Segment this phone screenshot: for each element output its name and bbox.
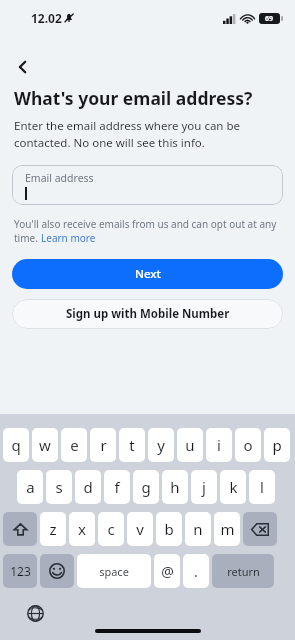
staticText: space (99, 564, 129, 579)
button[interactable]: return (212, 554, 274, 588)
staticText: 12.02 (31, 10, 62, 26)
button[interactable]: n (185, 512, 211, 546)
button[interactable]: t (119, 428, 145, 462)
staticText: a (26, 477, 35, 497)
staticText: j (202, 477, 206, 497)
button[interactable]: h (162, 470, 188, 504)
button[interactable]: u (177, 428, 203, 462)
staticText: u (185, 435, 195, 455)
button[interactable]: Sign up with Mobile Number (12, 299, 283, 329)
button[interactable]: j (191, 470, 217, 504)
button[interactable]: Email address (12, 165, 283, 205)
button[interactable]: z (40, 512, 66, 546)
button[interactable]: g (133, 470, 159, 504)
staticText: @ (161, 562, 174, 581)
staticText: i (217, 435, 221, 455)
button[interactable]: b (156, 512, 182, 546)
button[interactable]: m (214, 512, 240, 546)
button[interactable]: space (77, 554, 151, 588)
staticText: e (70, 435, 79, 455)
button[interactable]: f (104, 470, 130, 504)
staticText: m (220, 519, 235, 539)
button[interactable]: v (127, 512, 153, 546)
staticText: Sign up with Mobile Number (66, 306, 230, 322)
button[interactable]: e (61, 428, 87, 462)
button[interactable]: Delete (243, 512, 277, 546)
staticText: 123 (10, 563, 31, 579)
staticText: c (107, 519, 115, 539)
staticText: r (100, 435, 107, 455)
button[interactable]: l (249, 470, 275, 504)
staticText: t (129, 435, 135, 455)
button[interactable]: p (264, 428, 290, 462)
button[interactable]: Learn more (41, 231, 96, 245)
button[interactable]: Back (8, 52, 38, 82)
button[interactable]: @ (154, 554, 180, 588)
button[interactable]: c (98, 512, 124, 546)
staticText: p (272, 435, 282, 455)
staticText: Email address (25, 171, 94, 185)
staticText: f (114, 477, 120, 497)
staticText: 69 (265, 14, 274, 24)
staticText: k (229, 477, 238, 497)
button[interactable]: i (206, 428, 232, 462)
button[interactable]: . (183, 554, 209, 588)
staticText: d (83, 477, 93, 497)
staticText: What's your email address? (14, 86, 253, 110)
staticText: y (157, 435, 165, 455)
staticText: v (136, 519, 144, 539)
staticText: o (243, 435, 253, 455)
staticText: time. (14, 231, 41, 245)
staticText: q (11, 435, 21, 455)
staticText: h (170, 477, 180, 497)
button[interactable]: k (220, 470, 246, 504)
button[interactable]: 123 (3, 554, 37, 588)
staticText: z (49, 519, 57, 539)
button[interactable]: Shift (3, 512, 37, 546)
button[interactable]: r (90, 428, 116, 462)
staticText: Next (135, 266, 161, 282)
button[interactable]: a (17, 470, 43, 504)
button[interactable]: s (46, 470, 72, 504)
staticText: return (227, 564, 260, 579)
button[interactable]: Emoji (40, 554, 74, 588)
button[interactable]: Next (12, 259, 283, 289)
button[interactable]: o (235, 428, 261, 462)
staticText: Enter the email address where you can be… (14, 118, 241, 150)
button[interactable]: q (3, 428, 29, 462)
button[interactable]: d (75, 470, 101, 504)
staticText: w (39, 435, 51, 455)
staticText: n (193, 519, 203, 539)
staticText: . (194, 562, 198, 581)
staticText: x (78, 519, 86, 539)
button[interactable]: Change keyboard language (22, 600, 48, 626)
staticText: s (55, 477, 63, 497)
staticText: You'll also receive emails from us and c… (14, 217, 277, 231)
button[interactable]: w (32, 428, 58, 462)
staticText: g (141, 477, 151, 497)
staticText: b (164, 519, 174, 539)
button[interactable]: y (148, 428, 174, 462)
staticText: l (260, 477, 264, 497)
button[interactable]: x (69, 512, 95, 546)
